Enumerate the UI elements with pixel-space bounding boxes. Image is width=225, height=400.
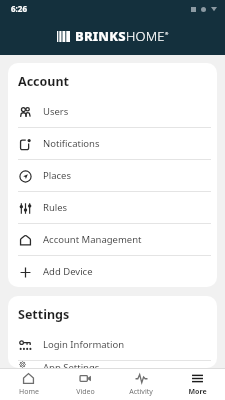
staticText: HOME <box>126 27 165 45</box>
staticText: Activity <box>129 387 153 397</box>
staticText: Home <box>19 387 39 397</box>
staticText: 6:26 <box>11 3 27 14</box>
staticText: Users <box>43 105 69 118</box>
staticText: Settings <box>18 306 70 323</box>
staticText: More <box>188 387 207 397</box>
button[interactable]: Account Management <box>8 224 217 256</box>
staticText: Account <box>18 73 70 90</box>
button[interactable]: Home <box>0 369 57 400</box>
button[interactable]: Places <box>8 160 217 192</box>
staticText: Video <box>76 387 95 397</box>
staticText: Login Information <box>43 338 125 351</box>
staticText: App Settings <box>43 361 100 368</box>
staticText: Places <box>43 169 71 182</box>
button[interactable]: App Settings <box>8 361 217 368</box>
button[interactable]: Notifications <box>8 128 217 160</box>
staticText: Add Device <box>43 265 93 278</box>
button[interactable]: Activity <box>113 369 169 400</box>
staticText: Rules <box>43 201 68 214</box>
button[interactable]: Add Device <box>8 256 217 287</box>
staticText: Notifications <box>43 137 100 150</box>
button[interactable]: Rules <box>8 192 217 224</box>
button[interactable]: Users <box>8 96 217 128</box>
button[interactable]: Video <box>57 369 113 400</box>
button[interactable]: More <box>169 369 225 400</box>
staticText: ® <box>165 31 169 36</box>
button[interactable]: Login Information <box>8 329 217 361</box>
staticText: BRINKS <box>75 27 126 45</box>
staticText: Account Management <box>43 233 142 246</box>
